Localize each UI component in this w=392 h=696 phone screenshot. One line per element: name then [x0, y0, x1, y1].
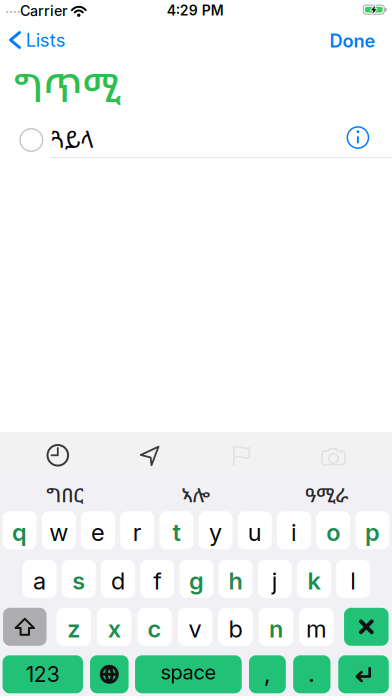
- button[interactable]: n: [259, 608, 293, 646]
- button[interactable]: m: [299, 608, 334, 646]
- button[interactable]: l: [336, 560, 370, 598]
- staticText: l: [350, 566, 356, 595]
- button[interactable]: Details: [347, 127, 368, 148]
- staticText: g: [189, 566, 204, 595]
- staticText: ኣሎ: [181, 481, 210, 508]
- button[interactable]: Done: [329, 30, 375, 52]
- staticText: ግበር: [46, 481, 83, 508]
- button[interactable]: Delete: [344, 608, 389, 646]
- button[interactable]: h: [219, 560, 253, 598]
- button[interactable]: Return: [338, 655, 389, 693]
- staticText: j: [272, 566, 278, 595]
- button[interactable]: r: [120, 511, 154, 549]
- staticText: i: [291, 518, 297, 547]
- staticText: 123: [26, 662, 60, 687]
- button[interactable]: ግበር: [46, 481, 83, 508]
- button[interactable]: g: [179, 560, 213, 598]
- button[interactable]: Flag: [233, 446, 250, 466]
- button[interactable]: x: [97, 608, 131, 646]
- staticText: p: [365, 518, 380, 547]
- staticText: .: [308, 659, 315, 688]
- button[interactable]: space: [135, 655, 242, 693]
- button[interactable]: 123: [2, 655, 83, 693]
- staticText: o: [326, 518, 340, 547]
- staticText: u: [248, 518, 262, 547]
- button[interactable]: Complete: [20, 129, 43, 151]
- staticText: z: [67, 614, 80, 643]
- staticText: ጓይላ: [52, 123, 94, 154]
- staticText: b: [228, 614, 242, 643]
- button[interactable]: ,: [249, 655, 286, 693]
- button[interactable]: Add photo: [322, 447, 345, 466]
- staticText: 4:29 PM: [167, 2, 224, 19]
- staticText: f: [153, 566, 161, 595]
- staticText: Carrier: [20, 2, 68, 19]
- button[interactable]: z: [56, 608, 91, 646]
- staticText: space: [160, 660, 216, 684]
- button[interactable]: Back to Lists: [8, 25, 68, 55]
- button[interactable]: y: [199, 511, 233, 549]
- staticText: v: [189, 614, 202, 643]
- staticText: s: [72, 566, 85, 595]
- button[interactable]: Next keyboard: [90, 655, 128, 693]
- button[interactable]: d: [101, 560, 135, 598]
- staticText: k: [307, 566, 320, 595]
- button[interactable]: a: [23, 560, 57, 598]
- staticText: c: [148, 614, 162, 643]
- button[interactable]: t: [159, 511, 193, 549]
- button[interactable]: j: [258, 560, 292, 598]
- button[interactable]: e: [81, 511, 115, 549]
- button[interactable]: s: [62, 560, 96, 598]
- staticText: ግጥሚ: [14, 61, 121, 113]
- staticText: d: [111, 566, 125, 595]
- staticText: q: [12, 518, 27, 547]
- staticText: h: [229, 566, 243, 595]
- button[interactable]: u: [238, 511, 272, 549]
- button[interactable]: w: [42, 511, 76, 549]
- staticText: y: [209, 518, 222, 547]
- button[interactable]: ኣሎ: [181, 481, 210, 508]
- button[interactable]: Remind me at a location: [140, 446, 160, 466]
- staticText: n: [269, 614, 283, 643]
- staticText: Done: [329, 30, 375, 52]
- button[interactable]: v: [178, 608, 212, 646]
- staticText: ዓሚራ: [305, 481, 348, 508]
- staticText: w: [49, 518, 68, 547]
- button[interactable]: .: [293, 655, 330, 693]
- button[interactable]: c: [137, 608, 172, 646]
- staticText: a: [33, 566, 46, 595]
- button[interactable]: b: [218, 608, 253, 646]
- button[interactable]: Remind me on a day: [47, 445, 68, 466]
- staticText: t: [172, 518, 180, 547]
- button[interactable]: ዓሚራ: [305, 481, 348, 508]
- button[interactable]: k: [297, 560, 331, 598]
- staticText: ,: [264, 659, 271, 688]
- button[interactable]: Shift: [3, 608, 47, 646]
- staticText: Lists: [26, 29, 66, 51]
- staticText: x: [108, 614, 121, 643]
- staticText: r: [133, 518, 142, 547]
- button[interactable]: q: [3, 511, 37, 549]
- button[interactable]: p: [355, 511, 389, 549]
- button[interactable]: f: [140, 560, 174, 598]
- staticText: e: [91, 518, 105, 547]
- button[interactable]: o: [316, 511, 350, 549]
- button[interactable]: i: [277, 511, 311, 549]
- staticText: m: [306, 614, 327, 643]
